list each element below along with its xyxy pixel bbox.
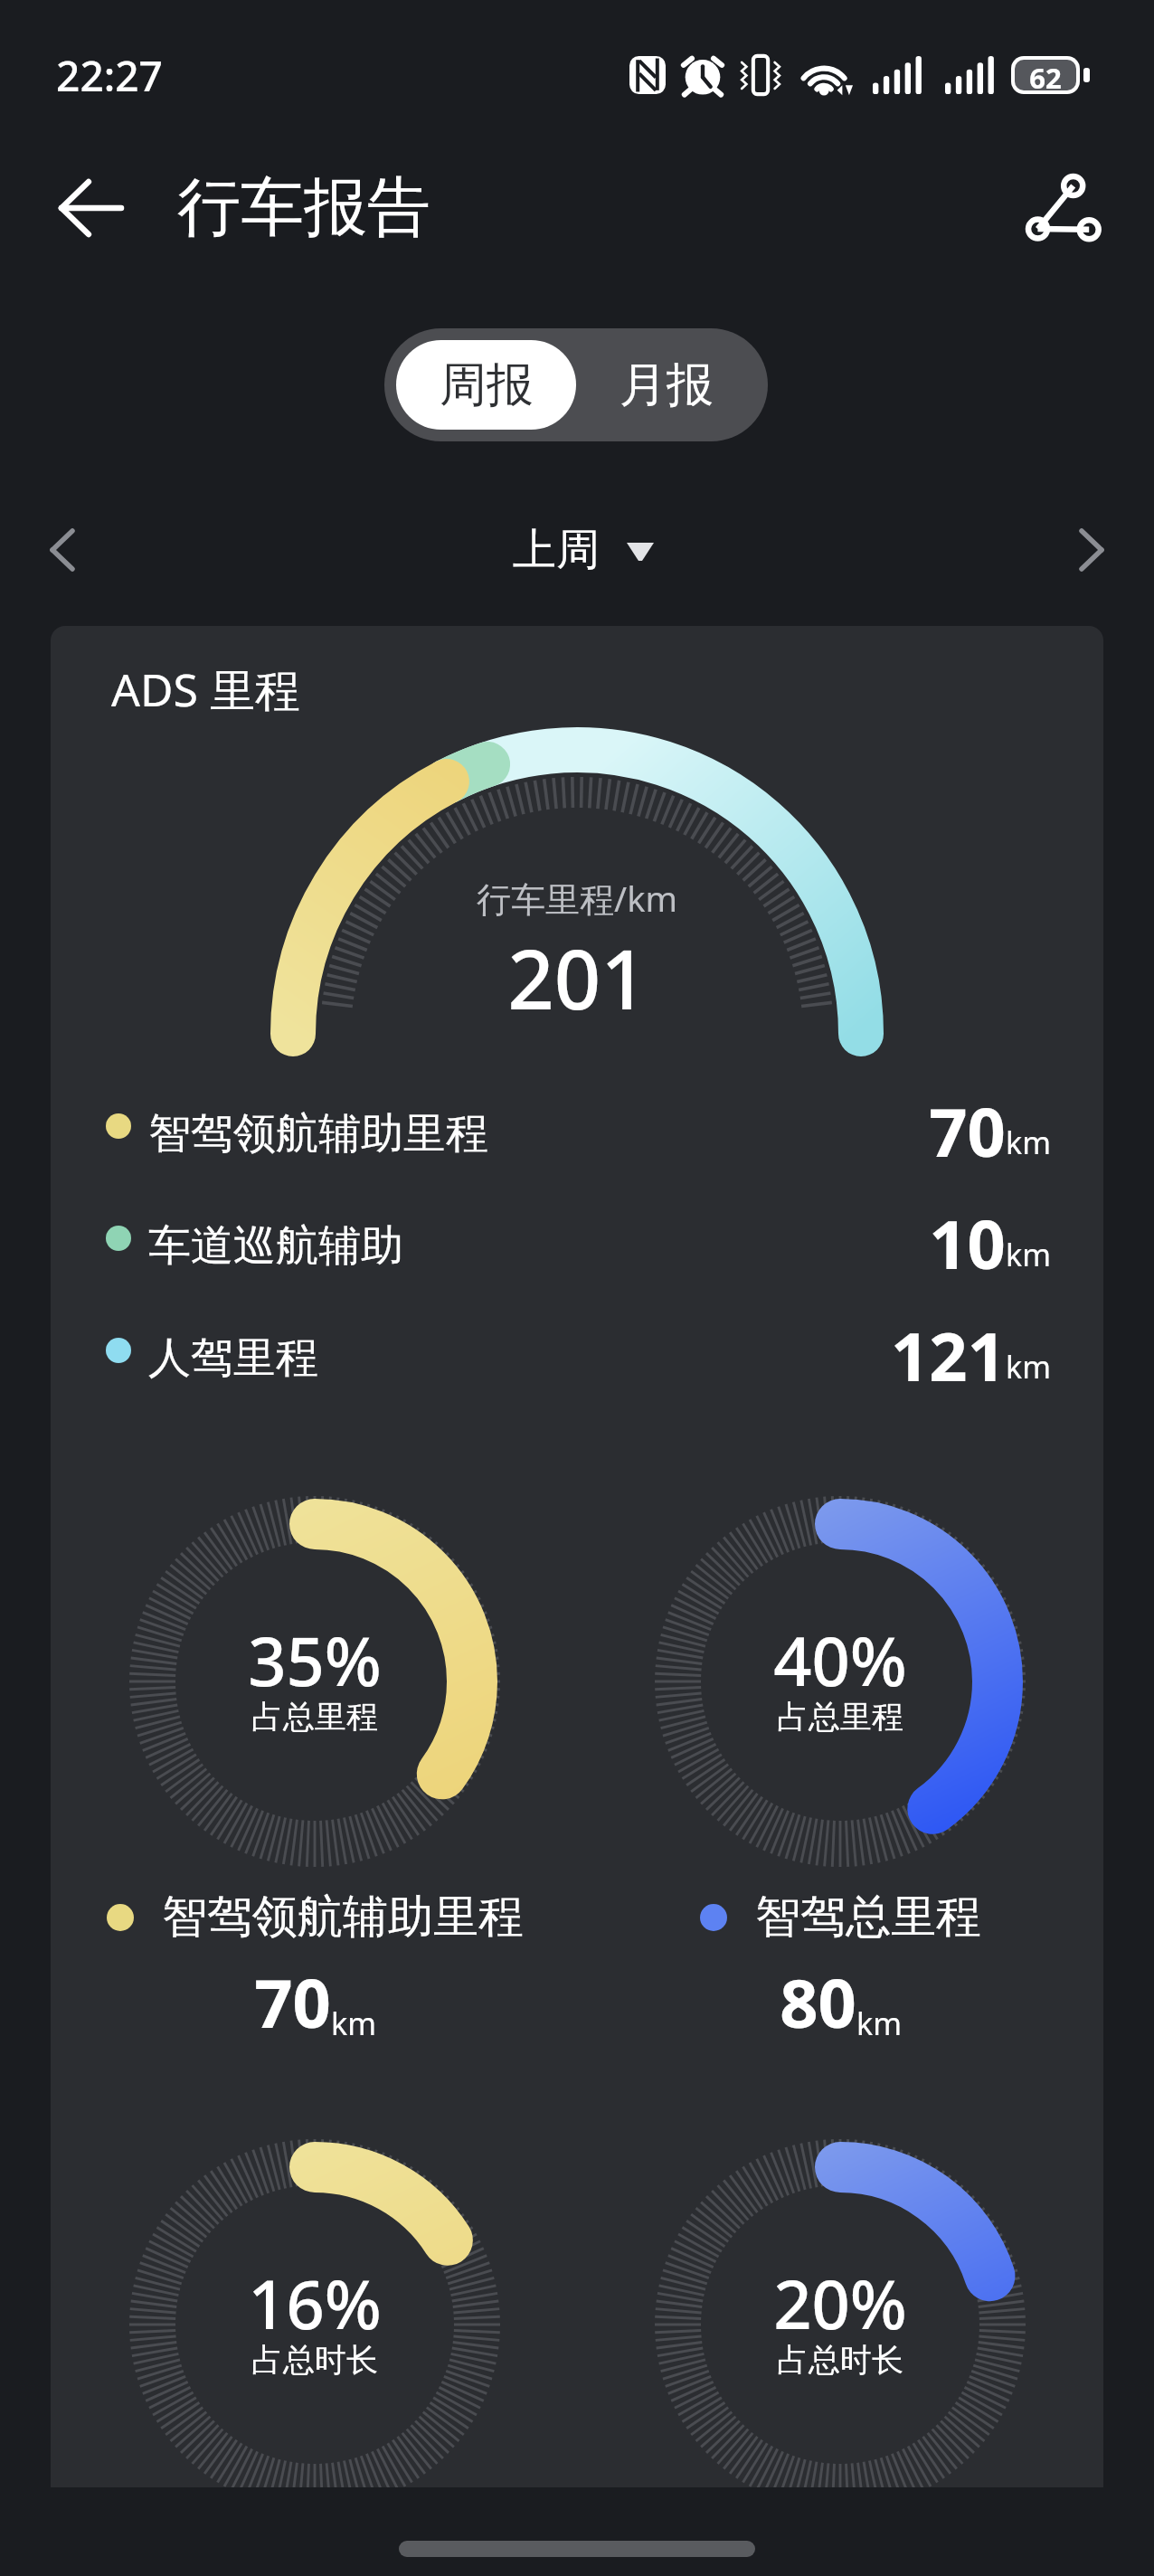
staticText: 周报 [440, 355, 534, 415]
staticText: 占总时长 [777, 2340, 903, 2380]
button[interactable]: 周报 [396, 340, 576, 430]
staticText: 70 [929, 1085, 1006, 1167]
staticText: 20% [773, 2258, 907, 2349]
staticText: 智驾领航辅助里程 [148, 1107, 488, 1160]
staticText: 22:27 [56, 47, 163, 104]
staticText: 80 [780, 1956, 856, 2048]
staticText: 121 [891, 1310, 1006, 1391]
staticText: 占总时长 [251, 2340, 378, 2380]
staticText: 上周 [513, 523, 600, 577]
staticText: 车道巡航辅助 [148, 1219, 403, 1273]
button[interactable]: Share [1009, 157, 1111, 259]
button[interactable]: 智驾领航辅助里程 [106, 1085, 1051, 1167]
staticText: km [1006, 1234, 1051, 1275]
staticText: km [856, 2003, 902, 2044]
staticText: 40% [773, 1615, 907, 1706]
staticText: 62 [1029, 60, 1062, 90]
staticText: 智驾总里程 [755, 1889, 981, 1946]
button[interactable]: 车道巡航辅助 [106, 1198, 1051, 1279]
staticText: 10 [929, 1198, 1006, 1279]
staticText: 占总里程 [777, 1697, 903, 1737]
staticText: 35% [248, 1615, 382, 1706]
staticText: 智驾领航辅助里程 [162, 1889, 524, 1946]
button[interactable]: 智驾总里程 [700, 1889, 981, 1946]
staticText: km [331, 2003, 376, 2044]
staticText: 人驾里程 [148, 1331, 318, 1385]
staticText: 行车报告 [177, 168, 430, 248]
button[interactable]: Back [40, 157, 141, 259]
button[interactable]: 人驾里程 [106, 1310, 1051, 1391]
staticText: 月报 [620, 355, 714, 415]
staticText: ADS 里程 [111, 658, 300, 720]
button[interactable]: 上周 [513, 507, 654, 593]
staticText: 占总里程 [251, 1697, 378, 1737]
button[interactable]: Previous week [19, 507, 106, 593]
button[interactable]: 智驾领航辅助里程 [107, 1889, 524, 1946]
staticText: 201 [507, 923, 648, 1034]
staticText: 行车里程/km [477, 875, 677, 922]
staticText: 16% [248, 2258, 382, 2349]
staticText: km [1006, 1122, 1051, 1163]
button[interactable]: Next week [1048, 507, 1135, 593]
staticText: 70 [254, 1956, 331, 2048]
button[interactable]: 月报 [576, 340, 756, 430]
staticText: km [1006, 1346, 1051, 1387]
